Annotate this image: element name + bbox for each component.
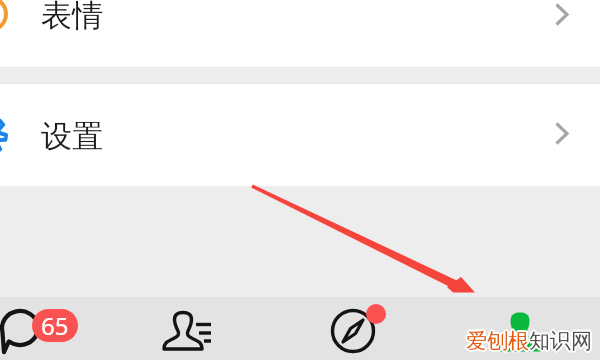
staticText: 爱刨根知识网 xyxy=(467,329,593,355)
staticText: 65 xyxy=(41,309,69,342)
staticText: 爱刨根知识网 xyxy=(467,327,593,353)
button[interactable]: Me xyxy=(450,297,600,360)
button[interactable]: Contacts xyxy=(150,297,300,360)
staticText: 知识网 xyxy=(529,328,592,354)
staticText: 爱刨根知识网 xyxy=(466,330,592,356)
staticText: 爱刨根知识网 xyxy=(465,327,591,353)
staticText: 爱刨根知识网 xyxy=(466,326,592,352)
staticText: 爱刨根知识网 xyxy=(465,329,591,355)
staticText: 设置 xyxy=(41,117,103,156)
button[interactable]: Discover xyxy=(300,297,450,360)
staticText: 爱刨根知识网 xyxy=(468,328,594,354)
button[interactable]: Chats xyxy=(0,297,150,360)
staticText: 表情 xyxy=(41,0,103,35)
staticText: 爱刨根 xyxy=(466,328,529,354)
button[interactable]: 设置 xyxy=(0,84,600,186)
button[interactable]: 表情 xyxy=(0,0,600,67)
staticText: 爱刨根知识网 xyxy=(464,328,590,354)
